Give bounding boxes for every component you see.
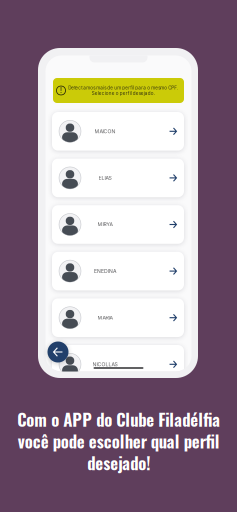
button[interactable]: MAICON bbox=[52, 112, 184, 151]
staticText: ELIAS bbox=[98, 175, 111, 181]
staticText: ! bbox=[60, 86, 62, 95]
staticText: MAICON bbox=[94, 128, 115, 134]
staticText: ENEDINA bbox=[94, 268, 116, 274]
staticText: NICOLLAS bbox=[92, 361, 117, 367]
staticText: Detectamos mais de um perfil para o mesm… bbox=[68, 85, 178, 96]
button[interactable]: ELIAS bbox=[52, 159, 184, 197]
button[interactable]: ENEDINA bbox=[52, 252, 184, 290]
button[interactable]: MIRYA bbox=[52, 205, 184, 244]
button[interactable]: MARIA bbox=[52, 298, 184, 337]
staticText: Com o APP do Clube Filadélfia você pode … bbox=[17, 407, 220, 475]
button[interactable]: NICOLLAS bbox=[52, 345, 184, 384]
staticText: MIRYA bbox=[97, 221, 112, 227]
button[interactable]: Back bbox=[47, 341, 68, 362]
staticText: MARIA bbox=[97, 315, 112, 321]
